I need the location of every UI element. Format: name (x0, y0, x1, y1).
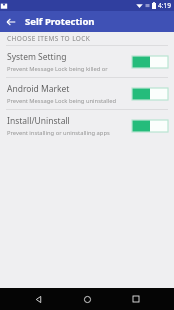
button[interactable]: Back (0, 11, 21, 32)
button[interactable]: Toggle on (131, 118, 169, 134)
staticText: System Setting (7, 51, 67, 63)
button[interactable]: Android Market (0, 78, 174, 109)
button[interactable]: Back (27, 288, 49, 310)
staticText: Android Market (7, 83, 70, 95)
staticText: 4:19 (158, 1, 171, 10)
button[interactable]: Toggle on (131, 54, 169, 70)
button[interactable]: Home (76, 288, 98, 310)
staticText: Prevent Message Lock being killed or uni… (7, 65, 128, 73)
staticText: Install/Uninstall (7, 115, 70, 127)
button[interactable]: System Setting (0, 46, 174, 77)
staticText: Self Protection (25, 15, 95, 28)
button[interactable]: Toggle on (131, 86, 169, 102)
staticText: Prevent Message Lock being uninstalled (7, 97, 117, 105)
staticText: Prevent installing or uninstalling apps (7, 129, 110, 137)
button[interactable]: Install/Uninstall (0, 110, 174, 141)
button[interactable]: Recent apps (125, 288, 147, 310)
staticText: CHOOSE ITEMS TO LOCK (7, 34, 91, 43)
